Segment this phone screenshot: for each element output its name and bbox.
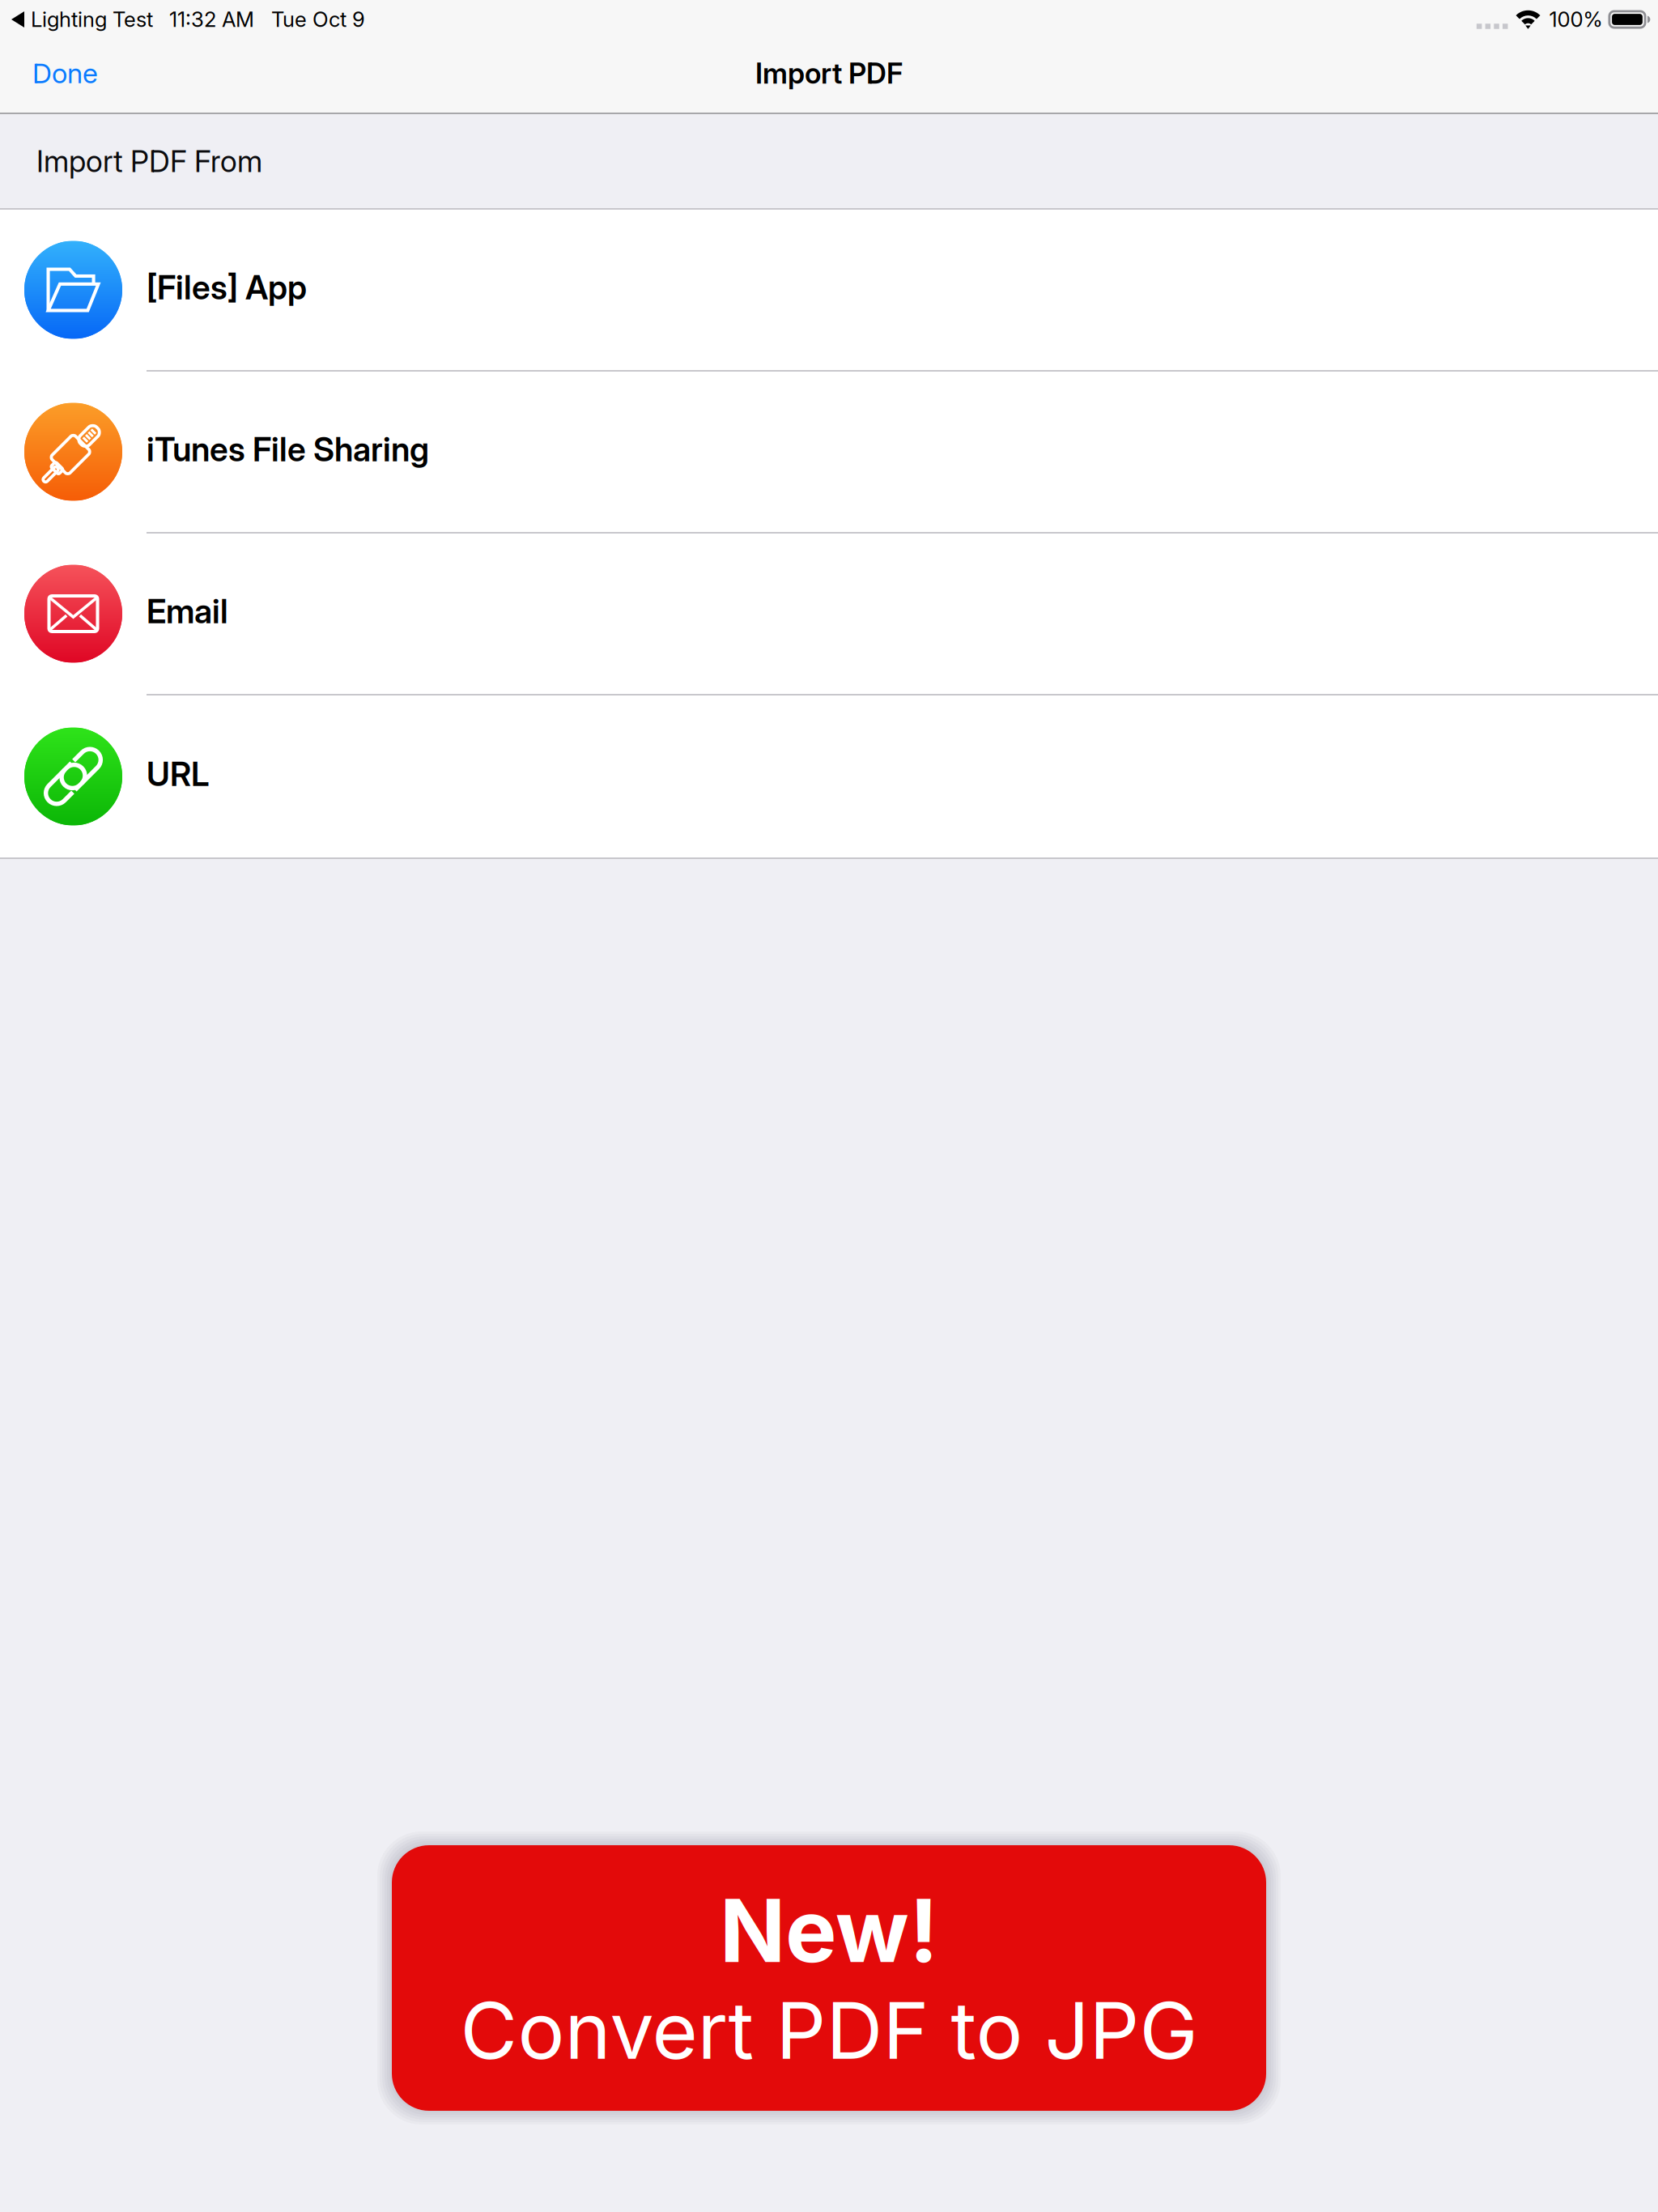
staticText: Lighting Test: [31, 7, 153, 32]
staticText: Import PDF: [755, 56, 903, 90]
staticText: Done: [32, 57, 98, 90]
staticText: iTunes File Sharing: [147, 429, 429, 469]
staticText: Tue Oct 9: [271, 7, 365, 32]
staticText: URL: [147, 754, 209, 794]
button[interactable]: Email: [0, 534, 1658, 696]
staticText: 11:32 AM: [169, 7, 254, 32]
button[interactable]: New!: [376, 1829, 1282, 2127]
staticText: Email: [147, 591, 228, 631]
button[interactable]: URL: [0, 696, 1658, 857]
staticText: Convert PDF to JPG: [460, 1983, 1198, 2078]
staticText: New!: [720, 1878, 938, 1983]
staticText: 100%: [1549, 7, 1603, 32]
button[interactable]: Done: [0, 47, 121, 104]
staticText: [Files] App: [147, 268, 307, 307]
staticText: Import PDF From: [36, 143, 262, 179]
button[interactable]: iTunes File Sharing: [0, 372, 1658, 534]
button[interactable]: [Files] App: [0, 210, 1658, 372]
